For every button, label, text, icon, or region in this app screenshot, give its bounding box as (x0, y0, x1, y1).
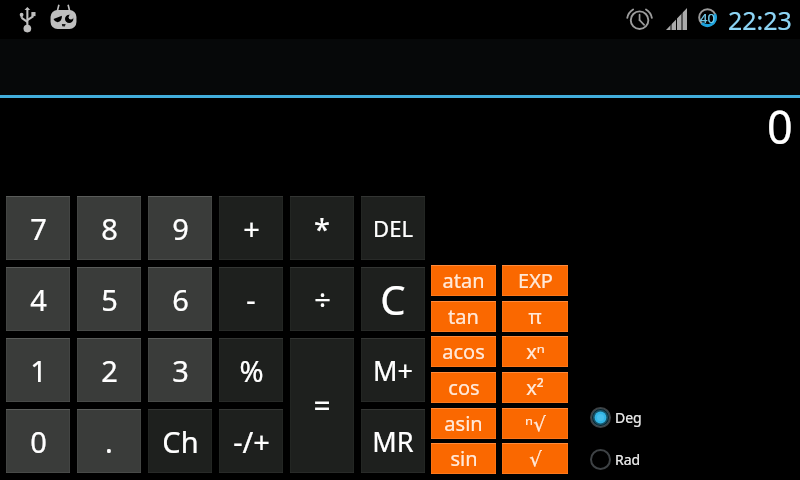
staticText: 5 (101, 280, 118, 319)
staticText: C (380, 272, 406, 326)
staticText: Rad (615, 450, 641, 469)
staticText: MR (372, 423, 414, 460)
staticText: % (239, 351, 264, 390)
button[interactable]: 0 (0, 98, 800, 190)
staticText: 22:23 (728, 3, 792, 33)
staticText: 6 (172, 280, 189, 319)
button[interactable]: 2 (77, 338, 141, 402)
staticText: xⁿ (526, 338, 545, 365)
staticText: + (243, 209, 260, 248)
staticText: DEL (373, 213, 413, 243)
button[interactable]: 3 (148, 338, 212, 402)
button[interactable]: acos (431, 336, 496, 367)
staticText: ÷ (314, 280, 331, 319)
staticText: √ (529, 447, 542, 470)
staticText: = (313, 385, 331, 426)
staticText: tan (448, 303, 479, 330)
other: Alarm set (629, 5, 651, 31)
staticText: 3 (172, 351, 189, 390)
staticText: 40 (700, 9, 715, 27)
other: Battery 40 percent (698, 8, 717, 27)
button[interactable]: π (502, 301, 568, 332)
staticText: EXP (518, 267, 553, 294)
button[interactable]: asin (431, 408, 496, 439)
button[interactable]: - (219, 267, 283, 331)
other: USB connected (20, 7, 36, 31)
staticText: 2 (101, 351, 118, 390)
other: System notification (50, 4, 77, 29)
staticText: π (528, 303, 542, 330)
button[interactable]: atan (431, 265, 496, 296)
button[interactable]: % (219, 338, 283, 402)
button[interactable]: 8 (77, 196, 141, 260)
button[interactable]: Ch (148, 409, 212, 473)
button[interactable]: 0 (6, 409, 70, 473)
button[interactable]: Deg (590, 407, 642, 428)
button[interactable]: sin (431, 443, 496, 474)
button[interactable]: EXP (502, 265, 568, 296)
button[interactable]: -/+ (219, 409, 283, 473)
button[interactable]: 4 (6, 267, 70, 331)
staticText: acos (442, 338, 485, 365)
button[interactable]: xⁿ (502, 336, 568, 367)
button[interactable]: 6 (148, 267, 212, 331)
staticText: 7 (30, 209, 47, 248)
button[interactable]: x² (502, 372, 568, 403)
button[interactable]: Rad (590, 449, 641, 470)
button[interactable]: MR (361, 409, 425, 473)
staticText: x² (526, 374, 544, 401)
staticText: ⁿ√ (525, 410, 546, 437)
staticText: . (105, 422, 113, 461)
button[interactable]: ⁿ√ (502, 408, 568, 439)
staticText: Ch (162, 422, 199, 461)
button[interactable]: 9 (148, 196, 212, 260)
button[interactable]: * (290, 196, 354, 260)
staticText: 0 (30, 422, 47, 461)
staticText: -/+ (233, 422, 270, 461)
button[interactable]: ÷ (290, 267, 354, 331)
other: Signal strength (666, 7, 688, 30)
staticText: sin (450, 445, 478, 472)
staticText: 4 (30, 280, 47, 319)
button[interactable]: √ (502, 443, 568, 474)
staticText: cos (448, 374, 480, 401)
button[interactable]: = (290, 338, 354, 473)
staticText: * (314, 209, 330, 248)
button[interactable]: 5 (77, 267, 141, 331)
staticText: 1 (30, 351, 47, 390)
button[interactable]: . (77, 409, 141, 473)
button[interactable]: tan (431, 301, 496, 332)
button[interactable]: 7 (6, 196, 70, 260)
staticText: 0 (767, 96, 793, 157)
button[interactable]: + (219, 196, 283, 260)
staticText: M+ (373, 352, 413, 389)
button[interactable]: 1 (6, 338, 70, 402)
button[interactable]: C (361, 267, 425, 331)
button[interactable]: M+ (361, 338, 425, 402)
staticText: 8 (101, 209, 118, 248)
button[interactable]: DEL (361, 196, 425, 260)
staticText: asin (444, 410, 483, 437)
staticText: Deg (615, 408, 642, 427)
staticText: - (246, 280, 256, 319)
staticText: atan (442, 267, 485, 294)
button[interactable]: cos (431, 372, 496, 403)
staticText: 9 (172, 209, 189, 248)
